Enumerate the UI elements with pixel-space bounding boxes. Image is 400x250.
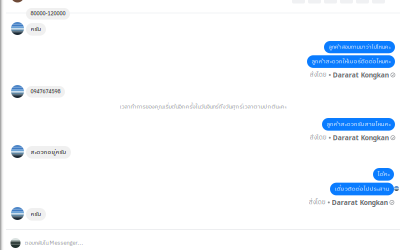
staticText: เดี๋ยวติดต่อไปประสาน (334, 184, 389, 194)
button[interactable]: ลูกค้าสะดวกให้เบอร์ติดต่อไหมคะ (307, 55, 395, 68)
button[interactable]: เดี๋ยวติดต่อไปประสาน (330, 183, 394, 195)
staticText: ได้คะ (377, 169, 389, 179)
button[interactable]: สะดวกอยู่ครับ (26, 146, 71, 159)
staticText: สะดวกอยู่ครับ (30, 147, 66, 157)
staticText: Dararat Kongkan (333, 71, 389, 79)
button[interactable]: ครับ (26, 23, 46, 36)
staticText: ส่งโดย (310, 133, 327, 143)
button[interactable]: ลูกค้าสะดวกรับสายไหนคะ (322, 118, 395, 131)
staticText: ลูกค้าสอบถามมาว่าไปไหนคะ (328, 42, 390, 52)
staticText: ครับ (30, 24, 41, 34)
button[interactable]: ตอบกลับใน Messenger... (10, 238, 210, 248)
button[interactable]: ครับ (26, 208, 46, 221)
button[interactable]: 80000-120000 (26, 8, 70, 20)
staticText: ครับ (30, 209, 41, 219)
staticText: 0947674598 (30, 87, 60, 96)
staticText: Dararat Kongkan (332, 198, 388, 207)
button[interactable]: ได้คะ (373, 168, 394, 181)
staticText: ส่งโดย (309, 197, 326, 207)
button[interactable]: ลูกค้าสอบถามมาว่าไปไหนคะ (324, 41, 395, 53)
staticText: ส่งโดย (310, 70, 327, 80)
staticText: เวลาทำการของคุณเริ่มต้นอีกครั้งในวันจันท… (119, 102, 286, 111)
staticText: ตอบกลับใน Messenger... (24, 238, 83, 248)
button[interactable]: 0947674598 (26, 86, 65, 98)
staticText: Dararat Kongkan (333, 133, 389, 142)
staticText: ลูกค้าสะดวกให้เบอร์ติดต่อไหมคะ (311, 57, 390, 66)
staticText: 80000-120000 (30, 9, 65, 18)
staticText: ลูกค้าสะดวกรับสายไหนคะ (326, 119, 390, 129)
